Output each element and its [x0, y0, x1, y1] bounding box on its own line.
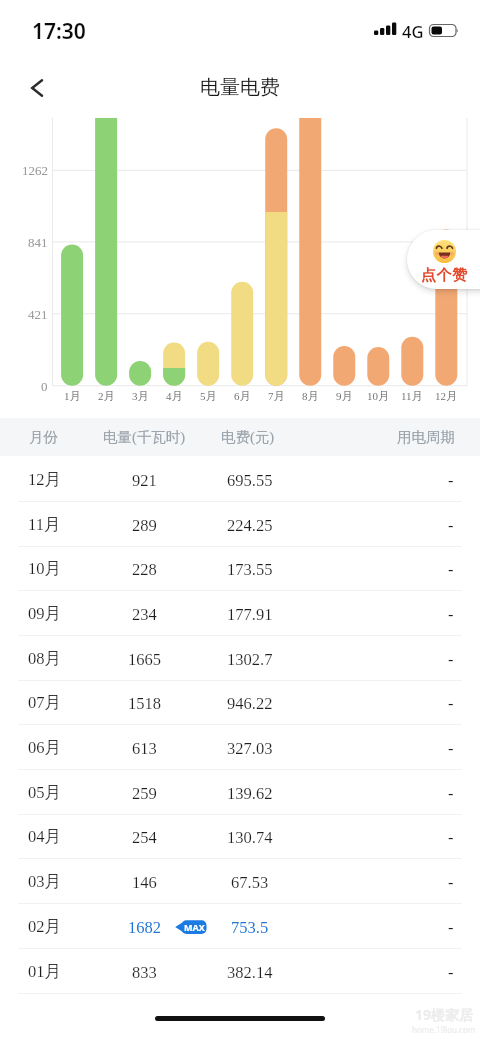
- staticText: -: [448, 650, 454, 668]
- staticText: 146: [132, 873, 157, 891]
- staticText: 228: [132, 560, 157, 578]
- staticText: 05月: [28, 782, 61, 803]
- staticText: 613: [132, 739, 157, 757]
- staticText: 9月: [336, 389, 353, 403]
- staticText: 07月: [28, 692, 61, 713]
- staticText: 电量电费: [200, 75, 280, 100]
- button[interactable]: 05月: [0, 770, 480, 815]
- staticText: 11月: [28, 514, 61, 535]
- staticText: 6月: [234, 389, 251, 403]
- staticText: 12月: [435, 389, 457, 403]
- button[interactable]: 06月: [0, 725, 480, 770]
- staticText: 224.25: [227, 516, 273, 534]
- staticText: 177.91: [227, 605, 273, 623]
- staticText: 695.55: [227, 471, 273, 489]
- staticText: 1518: [128, 694, 161, 712]
- staticText: 1682: [128, 918, 161, 936]
- staticText: 4月: [166, 389, 183, 403]
- staticText: 139.62: [227, 784, 273, 802]
- staticText: 327.03: [227, 739, 273, 757]
- staticText: -: [448, 516, 454, 534]
- staticText: -: [448, 828, 454, 846]
- staticText: -: [448, 918, 454, 936]
- staticText: 点个赞: [421, 266, 468, 284]
- staticText: 946.22: [227, 694, 273, 712]
- button[interactable]: 点个赞: [407, 230, 480, 289]
- staticText: 06月: [28, 737, 61, 758]
- staticText: -: [448, 560, 454, 578]
- staticText: 1月: [64, 389, 81, 403]
- staticText: -: [448, 963, 454, 981]
- staticText: 289: [132, 516, 157, 534]
- staticText: 电费(元): [221, 428, 275, 446]
- button[interactable]: 12月: [0, 457, 480, 502]
- staticText: 用电周期: [397, 428, 455, 446]
- staticText: -: [448, 784, 454, 802]
- staticText: 01月: [28, 961, 61, 982]
- button[interactable]: 08月: [0, 636, 480, 681]
- staticText: 1665: [128, 650, 161, 668]
- staticText: 67.53: [231, 873, 269, 891]
- staticText: 09月: [28, 603, 61, 624]
- staticText: 382.14: [227, 963, 273, 981]
- staticText: 10月: [367, 389, 389, 403]
- staticText: 03月: [28, 871, 61, 892]
- staticText: 421: [28, 307, 48, 321]
- button[interactable]: 11月: [0, 502, 480, 547]
- staticText: 3月: [132, 389, 149, 403]
- button[interactable]: 09月: [0, 591, 480, 636]
- staticText: 电量(千瓦时): [103, 428, 186, 446]
- staticText: 8月: [302, 389, 319, 403]
- button[interactable]: 01月: [0, 949, 480, 994]
- staticText: 5月: [200, 389, 217, 403]
- staticText: 753.5: [231, 918, 269, 936]
- staticText: home.19lou.com: [412, 1024, 476, 1035]
- staticText: 12月: [28, 469, 61, 490]
- button[interactable]: 02月: [0, 904, 480, 949]
- staticText: 173.55: [227, 560, 273, 578]
- staticText: 1262: [22, 163, 48, 177]
- staticText: 08月: [28, 648, 61, 669]
- staticText: 833: [132, 963, 157, 981]
- staticText: 19楼家居: [415, 1005, 474, 1024]
- staticText: 841: [28, 235, 48, 249]
- button[interactable]: 04月: [0, 814, 480, 859]
- staticText: 0: [41, 379, 48, 393]
- staticText: -: [448, 694, 454, 712]
- staticText: 254: [132, 828, 157, 846]
- staticText: -: [448, 605, 454, 623]
- staticText: MAX: [184, 921, 205, 933]
- staticText: 04月: [28, 826, 61, 847]
- staticText: -: [448, 739, 454, 757]
- staticText: 234: [132, 605, 157, 623]
- staticText: 11月: [401, 389, 423, 403]
- staticText: 10月: [28, 558, 61, 579]
- staticText: 7月: [268, 389, 285, 403]
- staticText: 2月: [98, 389, 115, 403]
- staticText: 02月: [28, 916, 61, 937]
- button[interactable]: 03月: [0, 859, 480, 904]
- button[interactable]: 07月: [0, 680, 480, 725]
- button[interactable]: 10月: [0, 546, 480, 591]
- staticText: 4G: [402, 20, 424, 42]
- staticText: 130.74: [227, 828, 273, 846]
- staticText: 17:30: [32, 17, 86, 46]
- staticText: -: [448, 873, 454, 891]
- staticText: 921: [132, 471, 157, 489]
- button[interactable]: [22, 76, 58, 102]
- staticText: 月份: [29, 428, 58, 446]
- staticText: 259: [132, 784, 157, 802]
- staticText: 1302.7: [227, 650, 273, 668]
- staticText: -: [448, 471, 454, 489]
